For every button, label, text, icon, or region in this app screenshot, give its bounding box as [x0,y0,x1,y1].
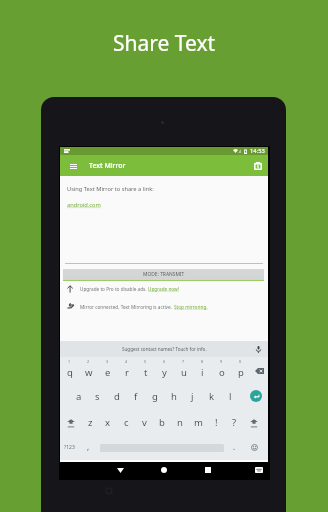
button[interactable]: . [225,435,244,460]
staticText: u [181,366,187,379]
button[interactable]: , [79,435,98,460]
staticText: ! [215,416,218,429]
staticText: e [105,366,111,379]
staticText: i [201,366,204,379]
button[interactable]: d [107,383,126,409]
button[interactable]: Enter [240,383,268,409]
button[interactable]: v [135,409,153,435]
button[interactable]: Shift [243,409,264,435]
staticText: s [95,390,100,403]
staticText: 4 [125,359,128,364]
button[interactable]: m [189,409,207,435]
staticText: p [238,366,244,379]
button[interactable]: android.com [67,201,101,209]
button[interactable]: 3 [98,357,117,383]
button[interactable]: 1 [60,357,79,383]
button[interactable]: 5 [136,357,155,383]
staticText: , [87,441,90,452]
staticText: h [171,390,177,403]
staticText: v [142,416,147,429]
button[interactable]: 2 [79,357,98,383]
button[interactable]: Suggest contact names? Touch for info. [60,341,268,357]
staticText: c [124,416,129,429]
staticText: k [209,390,215,403]
button[interactable]: x [99,409,117,435]
button[interactable]: Shift [60,409,81,435]
staticText: 7 [182,359,185,364]
button[interactable]: Recent apps [199,462,217,478]
button[interactable]: c [117,409,135,435]
staticText: 2 [87,359,90,364]
button[interactable]: Stop mirroring. [174,304,208,310]
staticText: Text Mirror [89,161,126,170]
staticText: o [219,366,225,379]
staticText: ?123 [64,444,75,451]
staticText: 0 [239,359,242,364]
staticText: . [233,441,236,452]
staticText: ? [232,416,237,429]
button[interactable]: 6 [155,357,174,383]
staticText: q [67,366,73,379]
staticText: 3 [106,359,109,364]
staticText: Mirror connected. Text Mirroring is acti… [80,304,174,310]
staticText: g [152,390,158,403]
button[interactable]: ?123 [60,435,79,460]
button[interactable]: s [88,383,107,409]
staticText: 8 [201,359,204,364]
button[interactable]: Back [111,462,129,478]
staticText: l [229,390,232,403]
staticText: Using Text Mirror to share a link: [67,185,154,193]
button[interactable]: h [164,383,183,409]
staticText: 9 [220,359,223,364]
staticText: f [134,390,138,403]
button[interactable]: a [69,383,88,409]
staticText: MODE: TRANSMIT [143,271,185,278]
button[interactable]: ? [225,409,243,435]
staticText: 5 [144,359,147,364]
button[interactable]: k [202,383,221,409]
staticText: j [191,390,194,403]
staticText: Share Text [0,29,328,58]
button[interactable]: 7 [174,357,193,383]
staticText: 1 [68,359,71,364]
button[interactable]: Open navigation menu [66,159,80,173]
staticText: a [76,390,82,403]
staticText: b [159,416,165,429]
staticText: z [88,416,93,429]
staticText: Upgrade to Pro to disable ads. [80,286,148,292]
button[interactable]: Emoji [244,435,265,460]
button[interactable]: 4 [117,357,136,383]
button[interactable]: 9 [212,357,231,383]
button[interactable]: 0 [231,357,250,383]
staticText: y [162,366,167,379]
staticText: x [105,416,111,429]
staticText: t [144,366,148,379]
button[interactable]: Space [98,435,225,460]
button[interactable]: Hide keyboard [250,462,268,478]
button[interactable]: l [221,383,240,409]
button[interactable]: Backspace [250,357,268,383]
button[interactable]: Copy to clipboard [251,159,264,172]
button[interactable]: f [126,383,145,409]
button[interactable]: MODE: TRANSMIT [63,269,264,280]
staticText: 14:53 [250,147,265,155]
button[interactable]: j [183,383,202,409]
button[interactable]: b [153,409,171,435]
staticText: 6 [163,359,166,364]
staticText: m [194,416,203,429]
button[interactable]: n [171,409,189,435]
button[interactable]: Home [155,462,173,478]
button[interactable]: 8 [193,357,212,383]
button[interactable]: Upgrade now! [148,286,179,292]
staticText: r [125,366,129,379]
button[interactable]: z [81,409,99,435]
button[interactable]: ! [207,409,225,435]
button[interactable]: g [145,383,164,409]
staticText: n [177,416,183,429]
staticText: d [114,390,120,403]
staticText: Suggest contact names? Touch for info. [122,346,207,352]
staticText: w [85,366,93,379]
